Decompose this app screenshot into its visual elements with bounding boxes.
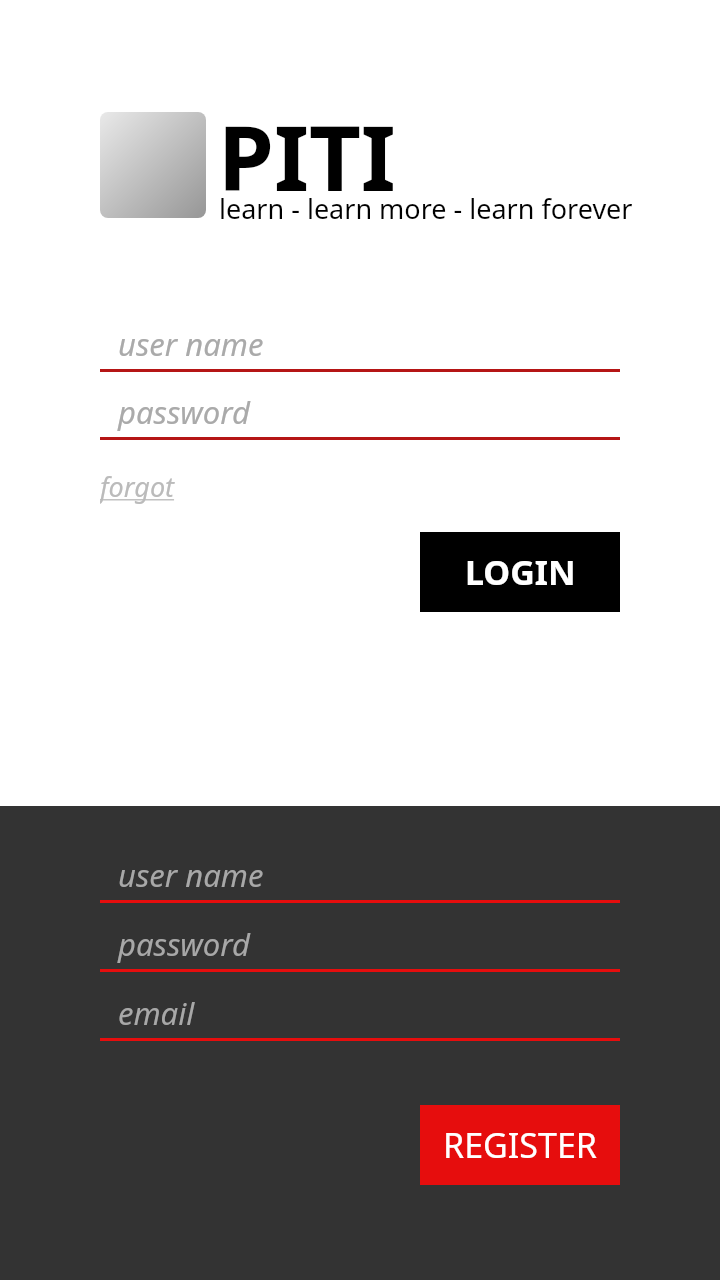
button[interactable]: password xyxy=(100,386,620,438)
staticText: learn - learn more - learn forever xyxy=(219,190,633,227)
staticText: password xyxy=(118,923,250,965)
button[interactable]: password xyxy=(100,918,620,970)
staticText: user name xyxy=(118,854,264,896)
button[interactable]: user name xyxy=(100,849,620,901)
button[interactable]: user name xyxy=(100,318,620,370)
button[interactable]: email xyxy=(100,987,620,1039)
staticText: REGISTER xyxy=(443,1122,597,1168)
staticText: email xyxy=(118,992,195,1034)
staticText: PITI xyxy=(218,95,396,218)
button[interactable]: LOGIN xyxy=(420,532,620,612)
staticText: user name xyxy=(118,323,264,365)
staticText: password xyxy=(118,391,250,433)
staticText: forgot password? xyxy=(100,468,300,508)
button[interactable]: REGISTER xyxy=(420,1105,620,1185)
other: PITI logo xyxy=(100,112,206,218)
staticText: LOGIN xyxy=(465,549,576,595)
button[interactable]: forgot password? xyxy=(100,468,300,508)
